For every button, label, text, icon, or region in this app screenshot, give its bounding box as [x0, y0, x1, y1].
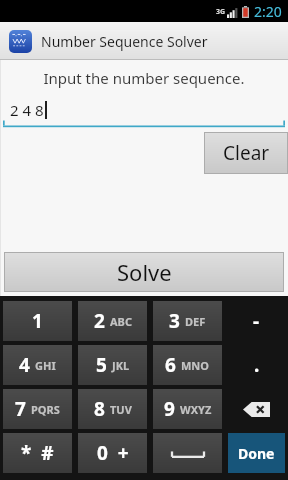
staticText: * # [21, 440, 54, 466]
staticText: 6 [165, 352, 176, 378]
button[interactable]: 6 [153, 345, 222, 385]
button[interactable]: 8 [78, 389, 147, 429]
staticText: WXYZ [180, 402, 212, 417]
button[interactable]: * # [3, 433, 72, 473]
staticText: 2:20 [254, 2, 282, 21]
staticText: JKL [112, 358, 130, 373]
staticText: Number Sequence Solver [41, 32, 208, 51]
staticText: ABC [110, 314, 132, 329]
staticText: 9 [164, 396, 175, 422]
staticText: Input the number sequence. [0, 68, 288, 88]
staticText: 3 [169, 308, 180, 334]
button[interactable]: Solve [5, 253, 283, 291]
staticText: 8 [94, 396, 105, 422]
button[interactable]: 4 [3, 345, 72, 385]
button[interactable]: 2 [78, 301, 147, 341]
button[interactable]: 9 [153, 389, 222, 429]
staticText: GHI [35, 358, 56, 373]
staticText: PQRS [31, 402, 60, 417]
staticText: . [254, 352, 260, 378]
staticText: Clear [223, 140, 270, 166]
button[interactable]: Done [228, 433, 285, 473]
staticText: - [253, 308, 260, 334]
button[interactable]: 0 + [78, 433, 147, 473]
staticText: MNO [181, 358, 210, 373]
staticText: 5 [96, 352, 107, 378]
staticText: 3G [216, 7, 226, 17]
staticText: Done [238, 444, 275, 463]
button[interactable]: Space [153, 433, 222, 473]
staticText: 2 4 8 [10, 100, 44, 120]
staticText: 0 + [97, 440, 129, 466]
button[interactable]: 7 [3, 389, 72, 429]
button[interactable]: 5 [78, 345, 147, 385]
staticText: 4 [19, 352, 30, 378]
button[interactable]: Clear [205, 133, 287, 173]
staticText: DEF [185, 314, 206, 329]
staticText: TUV [110, 402, 132, 417]
button[interactable]: 1 [3, 301, 72, 341]
button[interactable]: . [228, 345, 285, 385]
staticText: Solve [117, 257, 172, 287]
staticText: 7 [15, 396, 26, 422]
button[interactable]: - [228, 301, 285, 341]
button[interactable]: Delete [228, 389, 285, 429]
staticText: 1 [32, 308, 43, 334]
button[interactable]: 3 [153, 301, 222, 341]
button[interactable]: 2 4 8 [3, 97, 285, 127]
staticText: 2 [94, 308, 105, 334]
